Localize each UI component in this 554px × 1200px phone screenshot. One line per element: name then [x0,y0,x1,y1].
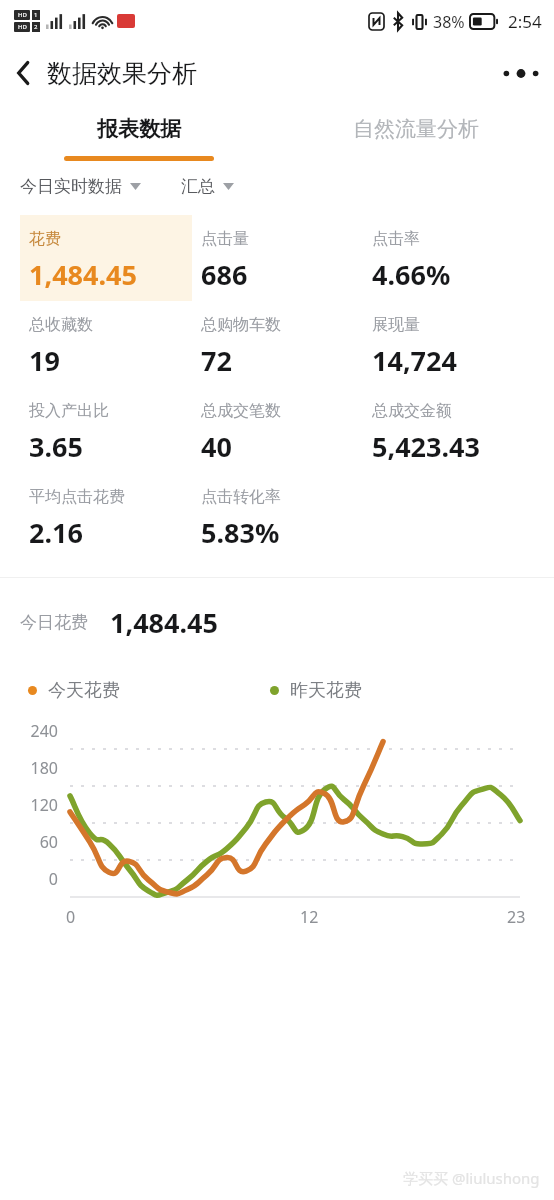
staticText: 0 [6,868,58,890]
staticText: 12 [300,906,319,928]
button[interactable]: 投入产出比 [20,387,192,473]
button[interactable]: 展现量 [363,301,534,387]
staticText: 14,724 [372,342,457,379]
staticText: 180 [6,757,58,779]
staticText: 昨天花费 [290,679,362,702]
staticText: 点击转化率 [201,487,281,507]
button[interactable]: 总成交笔数 [192,387,363,473]
staticText: 23 [507,906,526,928]
staticText: 点击率 [372,229,420,249]
button[interactable]: Back [0,48,41,98]
staticText: 报表数据 [97,116,181,142]
staticText: 今日花费 [20,612,88,633]
button[interactable]: 点击量 [192,215,363,301]
staticText: 点击量 [201,229,249,249]
staticText: 3.65 [29,428,83,465]
button[interactable]: 总收藏数 [20,301,192,387]
staticText: 240 [6,720,58,742]
staticText: 总收藏数 [29,315,93,335]
staticText: 40 [201,428,232,465]
staticText: 686 [201,256,248,293]
button[interactable]: 报表数据 [0,104,277,170]
staticText: 38% [433,11,465,33]
button[interactable]: 自然流量分析 [277,104,554,170]
button[interactable]: 平均点击花费 [20,473,192,559]
staticText: 5,423.43 [372,428,480,465]
staticText: 汇总 [181,176,215,197]
staticText: 总成交金额 [372,401,452,421]
staticText: 2 [34,23,38,31]
staticText: 总成交笔数 [201,401,281,421]
staticText: 4.66% [372,256,451,293]
button[interactable]: 今日实时数据 [20,170,141,203]
button[interactable]: More options [488,51,554,96]
staticText: 自然流量分析 [353,116,479,142]
staticText: 5.83% [201,514,280,551]
button[interactable]: 汇总 [181,170,234,203]
button[interactable]: 总成交金额 [363,387,534,473]
staticText: 1,484.45 [29,256,137,293]
staticText: 2:54 [508,10,542,33]
staticText: 学买买 @liulushong [403,1168,540,1188]
staticText: 花费 [29,229,61,249]
button[interactable]: 点击转化率 [192,473,363,559]
staticText: 平均点击花费 [29,487,125,507]
button[interactable]: 总购物车数 [192,301,363,387]
staticText: 今天花费 [48,679,120,702]
staticText: HD [18,23,27,31]
staticText: 19 [29,342,60,379]
staticText: 60 [6,831,58,853]
button[interactable]: 花费 [20,215,192,301]
staticText: 1 [34,11,38,19]
staticText: 总购物车数 [201,315,281,335]
button[interactable]: 点击率 [363,215,534,301]
staticText: 72 [201,342,232,379]
staticText: 数据效果分析 [47,58,197,89]
staticText: 0 [66,906,76,928]
staticText: HD [18,11,27,19]
staticText: 1,484.45 [110,604,218,641]
staticText: 投入产出比 [29,401,109,421]
staticText: 今日实时数据 [20,176,122,197]
staticText: 展现量 [372,315,420,335]
staticText: 2.16 [29,514,83,551]
staticText: 120 [6,794,58,816]
